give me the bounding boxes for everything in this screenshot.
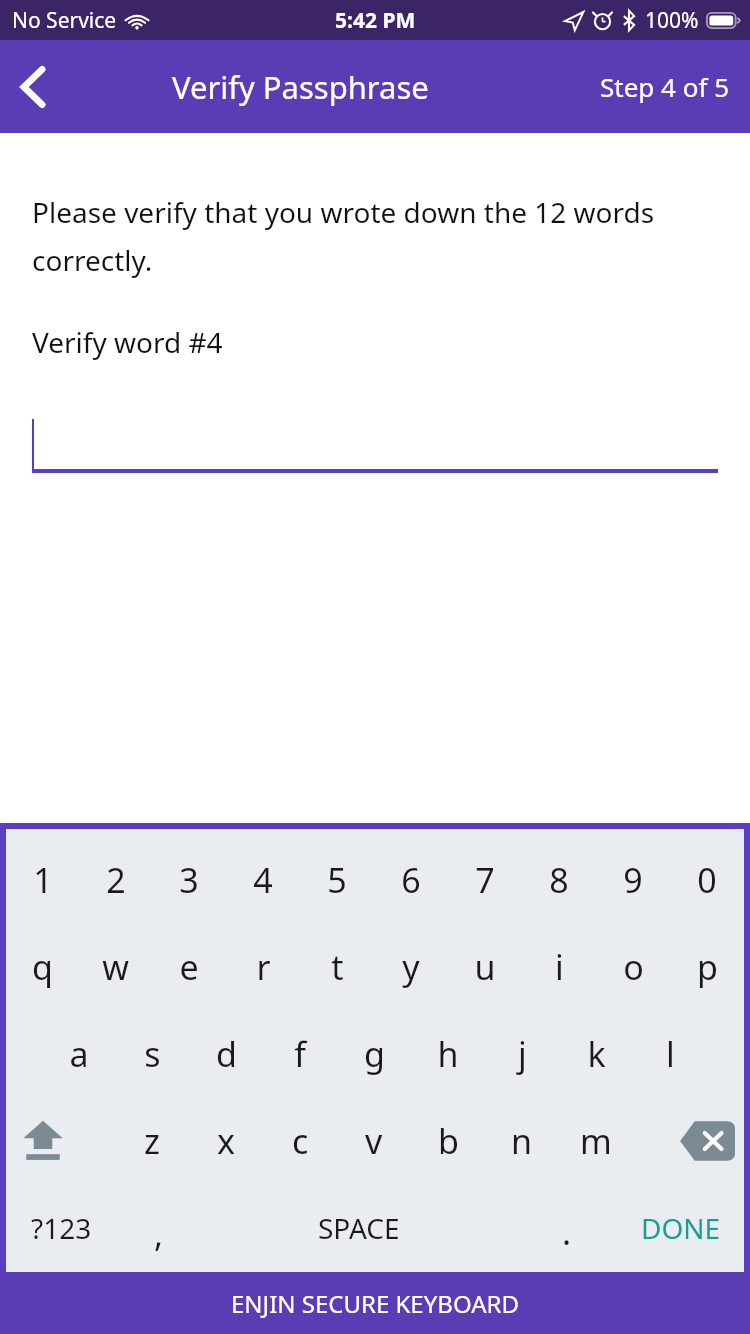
button[interactable]: b — [411, 1097, 485, 1184]
button[interactable]: SPACE — [202, 1184, 516, 1271]
button[interactable]: 8 — [522, 836, 596, 923]
button[interactable]: 7 — [448, 836, 522, 923]
button[interactable]: c — [263, 1097, 337, 1184]
staticText: m — [580, 1118, 612, 1164]
staticText: v — [365, 1118, 383, 1164]
button[interactable]: . — [516, 1184, 618, 1271]
staticText: . — [562, 1209, 572, 1255]
staticText: k — [587, 1031, 606, 1077]
button[interactable]: 0 — [670, 836, 744, 923]
staticText: z — [144, 1118, 160, 1164]
staticText: Verify Passphrase — [172, 66, 429, 108]
button[interactable]: Word input field — [32, 413, 718, 473]
staticText: ?123 — [31, 1209, 92, 1247]
staticText: 4 — [253, 857, 273, 903]
staticText: b — [438, 1118, 459, 1164]
button[interactable]: n — [485, 1097, 559, 1184]
staticText: 5 — [327, 857, 347, 903]
staticText: 8 — [549, 857, 569, 903]
button[interactable]: v — [337, 1097, 411, 1184]
staticText: ENJIN SECURE KEYBOARD — [231, 1287, 519, 1320]
staticText: p — [697, 944, 718, 990]
staticText: 6 — [401, 857, 421, 903]
staticText: x — [217, 1118, 235, 1164]
button[interactable]: m — [559, 1097, 633, 1184]
staticText: j — [518, 1031, 527, 1077]
button[interactable]: a — [42, 1010, 115, 1097]
staticText: t — [331, 944, 344, 990]
button[interactable]: k — [559, 1010, 633, 1097]
button[interactable]: o — [596, 923, 670, 1010]
button[interactable]: q — [6, 923, 79, 1010]
staticText: 1 — [33, 857, 53, 903]
button[interactable]: DONE — [618, 1184, 744, 1271]
button[interactable]: u — [448, 923, 522, 1010]
staticText: Please verify that you wrote down the 12… — [32, 193, 718, 279]
staticText: u — [474, 944, 496, 990]
staticText: Verify word #4 — [32, 323, 223, 361]
staticText: n — [511, 1118, 533, 1164]
button[interactable]: h — [411, 1010, 485, 1097]
button[interactable]: g — [337, 1010, 411, 1097]
staticText: 5:42 PM — [335, 6, 416, 35]
button[interactable]: 6 — [374, 836, 448, 923]
button[interactable]: z — [115, 1097, 189, 1184]
button[interactable]: l — [633, 1010, 707, 1097]
staticText: , — [154, 1211, 164, 1257]
staticText: s — [144, 1031, 161, 1077]
button[interactable]: Shift — [6, 1097, 79, 1184]
button[interactable]: i — [522, 923, 596, 1010]
staticText: e — [179, 944, 199, 990]
button[interactable]: , — [116, 1184, 202, 1271]
button[interactable]: y — [374, 923, 448, 1010]
staticText: d — [216, 1031, 237, 1077]
staticText: DONE — [641, 1209, 721, 1247]
button[interactable]: x — [189, 1097, 263, 1184]
staticText: Step 4 of 5 — [600, 69, 730, 104]
button[interactable]: Backspace — [670, 1097, 744, 1184]
staticText: o — [623, 944, 644, 990]
button[interactable]: 4 — [226, 836, 300, 923]
staticText: i — [555, 944, 564, 990]
button[interactable]: Back — [0, 54, 66, 120]
staticText: c — [292, 1118, 309, 1164]
staticText: 9 — [623, 857, 643, 903]
button[interactable]: p — [670, 923, 744, 1010]
button[interactable]: j — [485, 1010, 559, 1097]
button[interactable]: f — [263, 1010, 337, 1097]
staticText: h — [437, 1031, 459, 1077]
button[interactable]: 3 — [152, 836, 226, 923]
button[interactable]: e — [152, 923, 226, 1010]
staticText: 0 — [697, 857, 717, 903]
button[interactable]: d — [189, 1010, 263, 1097]
staticText: 2 — [106, 857, 126, 903]
button[interactable]: ENJIN SECURE KEYBOARD — [0, 1272, 750, 1334]
staticText: q — [32, 944, 53, 990]
button[interactable]: ?123 — [6, 1184, 116, 1271]
staticText: w — [102, 944, 129, 990]
staticText: y — [402, 944, 420, 990]
staticText: 100% — [645, 6, 699, 35]
button[interactable]: t — [300, 923, 374, 1010]
button[interactable]: w — [79, 923, 152, 1010]
staticText: l — [666, 1031, 675, 1077]
staticText: g — [364, 1031, 385, 1077]
button[interactable]: s — [115, 1010, 189, 1097]
staticText: No Service — [12, 6, 117, 35]
staticText: f — [294, 1031, 306, 1077]
button[interactable]: 1 — [6, 836, 79, 923]
staticText: 3 — [179, 857, 199, 903]
button[interactable]: 5 — [300, 836, 374, 923]
button[interactable]: r — [226, 923, 300, 1010]
staticText: r — [256, 944, 271, 990]
button[interactable]: 2 — [79, 836, 152, 923]
button[interactable]: 9 — [596, 836, 670, 923]
staticText: a — [69, 1031, 89, 1077]
staticText: 7 — [475, 857, 495, 903]
staticText: SPACE — [318, 1209, 400, 1247]
